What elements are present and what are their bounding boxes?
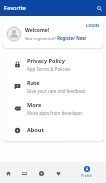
staticText: More apps from developer — [27, 110, 83, 116]
staticText: Give your rate and feedback — [27, 88, 86, 94]
button[interactable]: Favorites — [50, 162, 67, 183]
button[interactable]: Live TV — [16, 162, 33, 183]
staticText: Profile — [81, 173, 92, 178]
staticText: Not registered? Register Now — [25, 35, 86, 41]
staticText: More — [27, 101, 42, 109]
button[interactable]: Welcome! — [3, 19, 103, 48]
button[interactable]: Profile — [67, 162, 106, 183]
button[interactable]: Search — [92, 0, 106, 16]
staticText: About — [27, 126, 44, 134]
button[interactable]: Home — [0, 162, 16, 183]
staticText: Welcome! — [25, 27, 50, 34]
button[interactable]: Privacy Policy — [3, 53, 103, 75]
staticText: Rate — [27, 79, 40, 87]
button[interactable]: Videos — [33, 162, 50, 183]
button[interactable]: More — [3, 97, 103, 119]
staticText: Favorite — [4, 4, 92, 12]
staticText: App Terms & Policies — [27, 66, 71, 72]
button[interactable]: LOGIN — [86, 19, 103, 28]
staticText: Privacy Policy — [27, 57, 65, 65]
button[interactable]: Rate — [3, 75, 103, 97]
button[interactable]: About — [3, 119, 103, 141]
